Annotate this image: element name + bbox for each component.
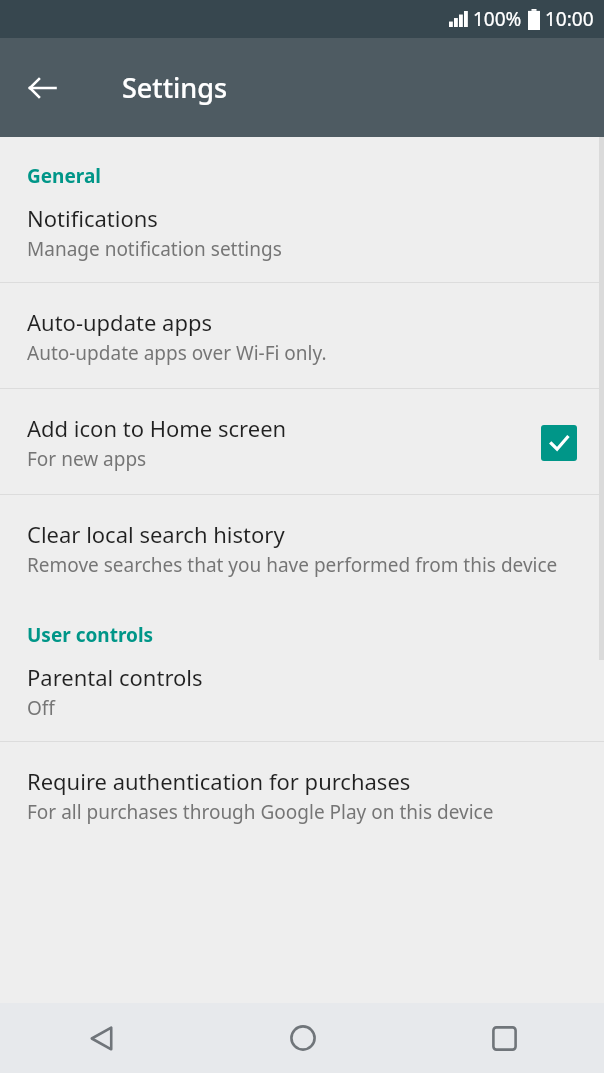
staticText: Auto-update apps over Wi-Fi only. [27, 340, 327, 366]
staticText: For all purchases through Google Play on… [27, 799, 494, 825]
staticText: 100% [473, 6, 522, 32]
staticText: User controls [27, 622, 604, 648]
staticText: Notifications [27, 203, 158, 233]
staticText: Parental controls [27, 662, 203, 692]
button[interactable]: Back [73, 1010, 129, 1066]
button[interactable]: Parental controls [0, 648, 604, 741]
button[interactable]: Back [14, 60, 70, 116]
staticText: Require authentication for purchases [27, 766, 411, 796]
staticText: General [27, 163, 604, 189]
button[interactable]: Add icon to Home screen [541, 425, 577, 461]
staticText: Manage notification settings [27, 236, 282, 262]
button[interactable]: Auto-update apps [0, 283, 604, 388]
button[interactable]: Home [275, 1010, 331, 1066]
staticText: Add icon to Home screen [27, 413, 287, 443]
button[interactable]: Add icon to Home screen [0, 389, 604, 494]
staticText: Remove searches that you have performed … [27, 552, 558, 578]
button[interactable]: Notifications [0, 189, 604, 282]
button[interactable]: Require authentication for purchases [0, 742, 604, 847]
staticText: Settings [122, 69, 228, 106]
button[interactable]: Clear local search history [0, 495, 604, 600]
staticText: Clear local search history [27, 519, 285, 549]
staticText: For new apps [27, 446, 147, 472]
button[interactable]: Recent apps [476, 1010, 532, 1066]
staticText: Off [27, 695, 55, 721]
staticText: 10:00 [545, 6, 594, 32]
staticText: Auto-update apps [27, 307, 212, 337]
